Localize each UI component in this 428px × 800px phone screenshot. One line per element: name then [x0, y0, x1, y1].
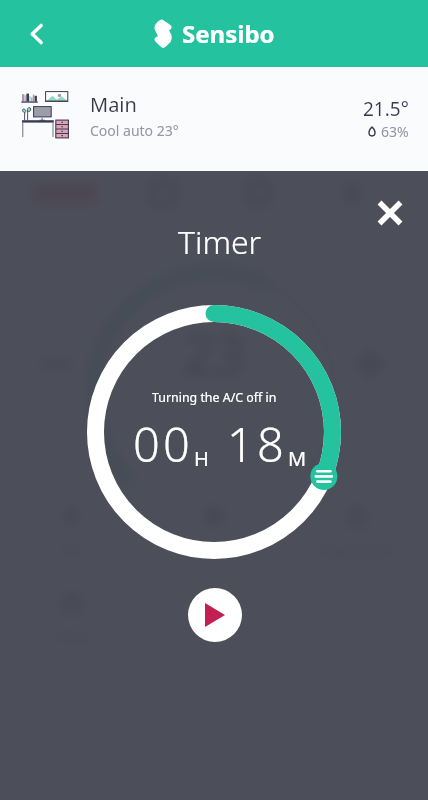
button[interactable]: Back	[14, 11, 60, 57]
staticText: 23	[183, 316, 245, 390]
staticText: Swing	[197, 542, 231, 558]
button[interactable]: Swing	[142, 490, 285, 575]
button[interactable]: Close	[368, 191, 412, 235]
staticText: H	[194, 445, 209, 472]
button[interactable]: Keypad lock	[285, 490, 428, 575]
staticText: Main	[90, 91, 137, 118]
staticText: Sensibo	[182, 17, 275, 50]
staticText: M	[288, 445, 307, 472]
button[interactable]: Main	[0, 67, 428, 171]
staticText: 00	[133, 412, 194, 476]
staticText: 18	[227, 412, 288, 476]
button[interactable]: Start timer	[188, 588, 242, 642]
button[interactable]: Fan	[0, 490, 142, 575]
staticText: Cool auto 23°	[90, 121, 179, 140]
staticText: Turning the A/C off in	[152, 389, 277, 406]
staticText: 63%	[381, 122, 409, 141]
staticText: 21.5°	[363, 96, 409, 122]
staticText: Timer	[178, 220, 262, 264]
